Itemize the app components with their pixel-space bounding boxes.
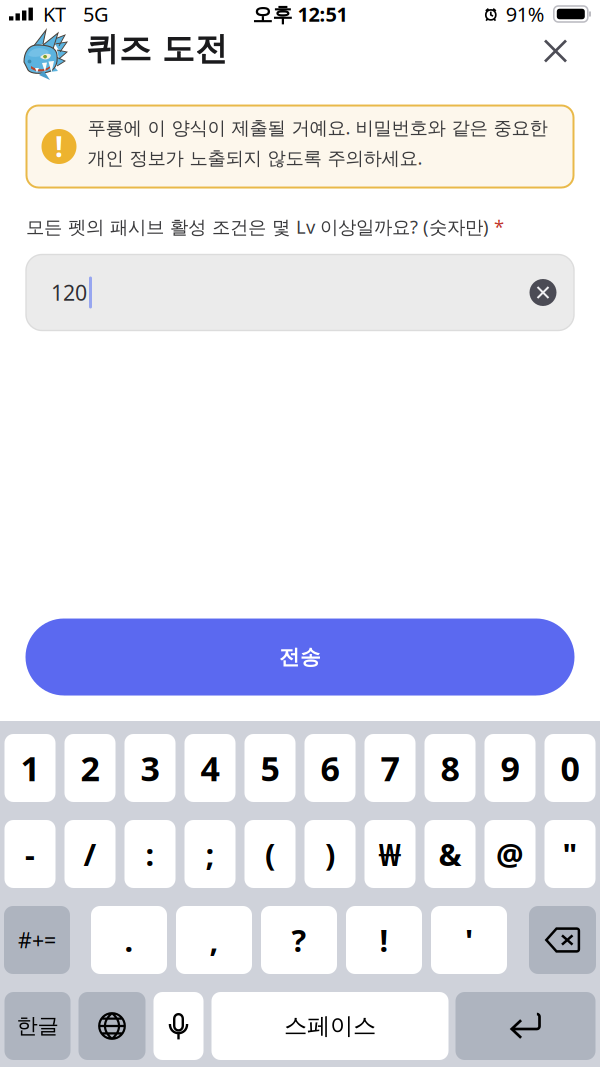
button[interactable]: ( — [244, 820, 295, 888]
button[interactable]: #+= — [4, 906, 70, 974]
staticText: ₩ — [378, 833, 401, 875]
button[interactable]: - — [4, 820, 55, 888]
staticText: & — [438, 833, 461, 875]
button[interactable]: / — [64, 820, 115, 888]
button[interactable]: 4 — [184, 734, 235, 802]
button[interactable]: , — [176, 906, 252, 974]
button[interactable]: ! — [346, 906, 422, 974]
button[interactable]: : — [124, 820, 175, 888]
button[interactable]: " — [544, 820, 595, 888]
staticText: ? — [291, 919, 306, 961]
staticText: ( — [265, 833, 275, 875]
button[interactable]: 8 — [424, 734, 475, 802]
staticText: 4 — [200, 745, 219, 791]
staticText: 8 — [440, 745, 459, 791]
staticText: 5 — [260, 745, 279, 791]
button[interactable]: 지우기 — [529, 906, 596, 974]
button[interactable]: 3 — [124, 734, 175, 802]
staticText: 6 — [320, 745, 339, 791]
staticText: ; — [205, 833, 214, 875]
button[interactable]: 1 — [4, 734, 55, 802]
staticText: 개인 정보가 노출되지 않도록 주의하세요. — [87, 145, 422, 170]
staticText: . — [124, 919, 133, 961]
button[interactable]: @ — [484, 820, 535, 888]
staticText: 오후 12:51 — [252, 0, 347, 28]
staticText: - — [25, 833, 35, 875]
staticText: 1 — [20, 745, 39, 791]
staticText: " — [562, 833, 577, 875]
button[interactable]: 2 — [64, 734, 115, 802]
button[interactable]: ₩ — [364, 820, 415, 888]
staticText: 퀴즈 도전 — [86, 28, 228, 69]
button[interactable]: 0 — [544, 734, 595, 802]
staticText: 모든 펫의 패시브 활성 조건은 몇 Lv 이상일까요? (숫자만) — [26, 214, 489, 239]
button[interactable]: 확인 — [455, 992, 595, 1060]
staticText: 0 — [560, 745, 579, 791]
staticText: 91% — [506, 0, 545, 28]
button[interactable]: 닫기 — [532, 28, 578, 74]
staticText: 120 — [51, 278, 87, 307]
staticText: #+= — [18, 925, 56, 955]
button[interactable]: 6 — [304, 734, 355, 802]
staticText: ' — [465, 919, 473, 961]
staticText: , — [209, 919, 218, 961]
staticText: ! — [379, 919, 388, 961]
button[interactable]: ? — [261, 906, 337, 974]
staticText: KT — [43, 0, 66, 28]
staticText: 5G — [83, 0, 109, 28]
button[interactable]: 7 — [364, 734, 415, 802]
button[interactable]: 받아쓰기 — [153, 992, 203, 1060]
staticText: 7 — [380, 745, 399, 791]
staticText: ) — [325, 833, 335, 875]
staticText: : — [145, 833, 154, 875]
button[interactable]: 한글 — [4, 992, 70, 1060]
staticText: 전송 — [279, 644, 321, 670]
staticText: 3 — [140, 745, 159, 791]
button[interactable]: 5 — [244, 734, 295, 802]
button[interactable]: 스페이스 — [211, 992, 448, 1060]
button[interactable]: 전송 — [25, 618, 574, 695]
staticText: * — [489, 214, 504, 239]
button[interactable]: & — [424, 820, 475, 888]
staticText: 한글 — [16, 1013, 58, 1039]
button[interactable]: ; — [184, 820, 235, 888]
button[interactable]: ' — [431, 906, 507, 974]
button[interactable]: 언어 변경 — [78, 992, 145, 1060]
staticText: 9 — [500, 745, 519, 791]
button[interactable]: . — [91, 906, 167, 974]
staticText: @ — [496, 833, 524, 875]
staticText: 푸룡에 이 양식이 제출될 거예요. 비밀번호와 같은 중요한 — [87, 115, 547, 140]
staticText: ! — [55, 127, 63, 165]
button[interactable]: ) — [304, 820, 355, 888]
staticText: / — [83, 833, 96, 875]
button[interactable]: 지우기 — [523, 272, 563, 312]
staticText: 2 — [80, 745, 99, 791]
button[interactable]: 9 — [484, 734, 535, 802]
staticText: 스페이스 — [284, 1011, 376, 1041]
